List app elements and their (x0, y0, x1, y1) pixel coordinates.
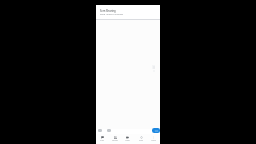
button[interactable]: Suggested reply (98, 129, 102, 132)
button[interactable]: Calls (134, 134, 147, 144)
button[interactable]: Share screen (152, 128, 160, 133)
staticText: Scrn Sharing (100, 9, 116, 13)
staticText: Calls (139, 139, 143, 141)
staticText: More (151, 139, 156, 141)
button[interactable]: More (147, 134, 160, 144)
staticText: Spaces (112, 139, 118, 141)
staticText: Send Notes or sharing (100, 13, 123, 16)
staticText: Chat (100, 139, 104, 141)
staticText: Meet (125, 139, 130, 141)
button[interactable]: Chat (96, 134, 108, 144)
button[interactable]: Spaces (108, 134, 121, 144)
button[interactable]: Meet (121, 134, 134, 144)
button[interactable]: Suggested reply (107, 129, 111, 132)
button[interactable]: Scroll to bottom (152, 65, 155, 69)
